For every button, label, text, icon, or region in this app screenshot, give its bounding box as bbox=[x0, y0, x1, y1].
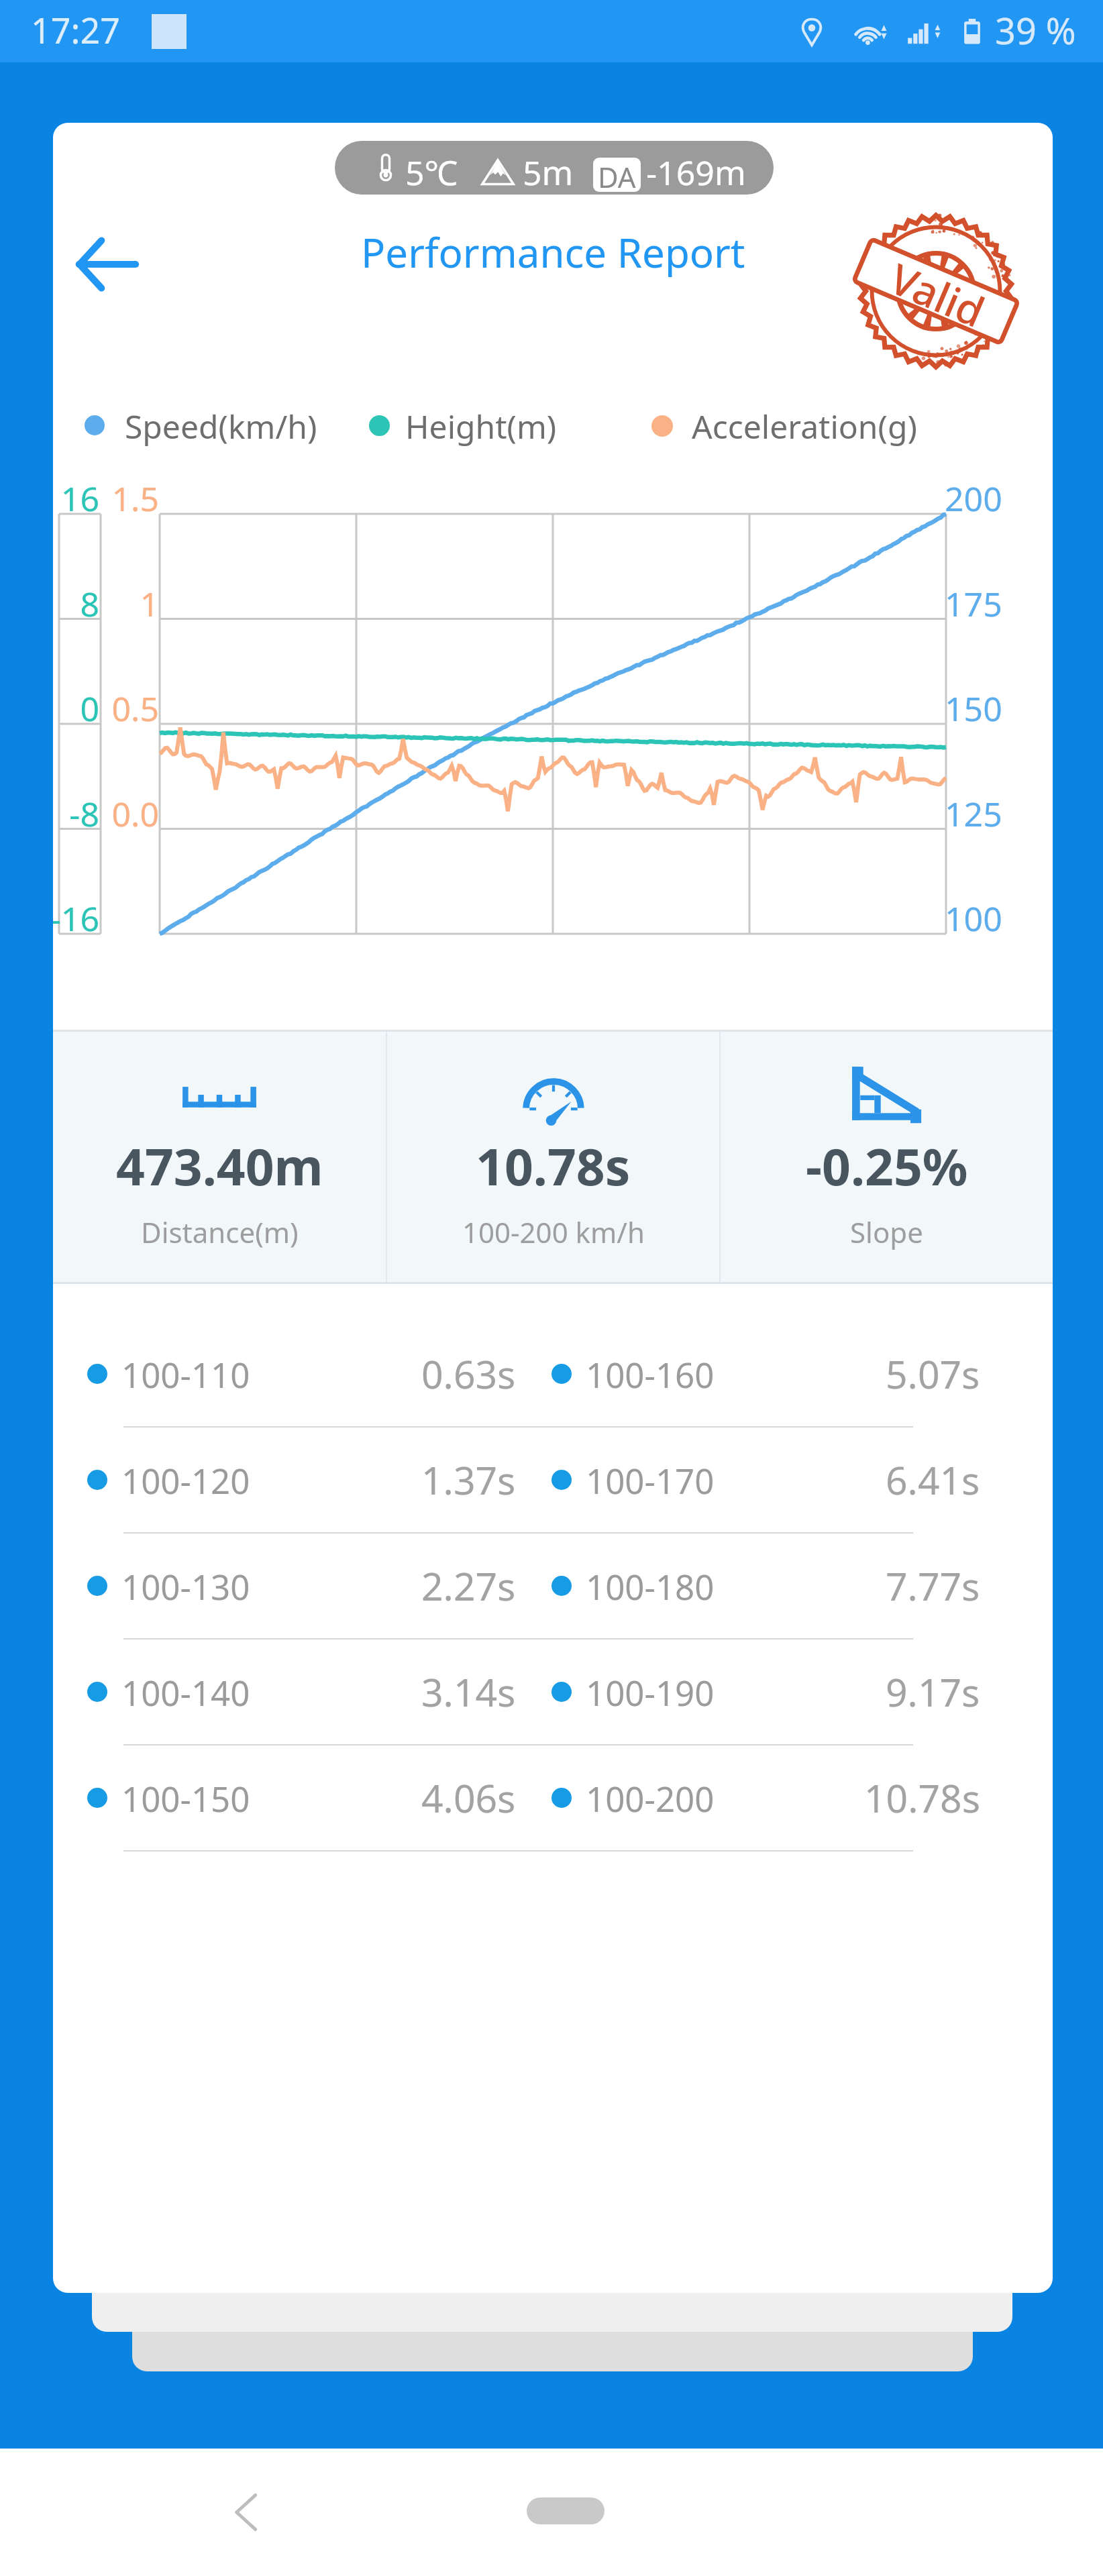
staticText: 1.37s bbox=[421, 1454, 516, 1506]
staticText: 5m bbox=[523, 150, 574, 195]
staticText: 125 bbox=[945, 791, 1002, 837]
staticText: 100-200 km/h bbox=[462, 1213, 645, 1251]
staticText: 1.5 bbox=[78, 476, 159, 521]
staticText: 175 bbox=[945, 581, 1002, 627]
button[interactable]: 100-150 bbox=[53, 1749, 1053, 1847]
staticText: 5℃ bbox=[405, 150, 458, 195]
staticText: 100-110 bbox=[121, 1351, 250, 1397]
button[interactable]: -0.25% bbox=[721, 1030, 1053, 1284]
staticText: DA bbox=[598, 158, 636, 192]
staticText: 200 bbox=[945, 476, 1002, 521]
staticText: -8 bbox=[53, 791, 99, 837]
staticText: Performance Report bbox=[361, 225, 745, 280]
staticText: 473.40m bbox=[116, 1132, 323, 1200]
button[interactable]: 100-110 bbox=[53, 1325, 1053, 1423]
staticText: 100-200 bbox=[586, 1775, 715, 1821]
staticText: 0.5 bbox=[78, 686, 159, 731]
staticText: 100-180 bbox=[586, 1563, 715, 1609]
staticText: -169m bbox=[646, 150, 746, 195]
staticText: 17:27 bbox=[31, 6, 120, 54]
staticText: 150 bbox=[945, 686, 1002, 731]
staticText: -0.25% bbox=[806, 1132, 968, 1200]
button[interactable]: 10.78s bbox=[387, 1030, 719, 1284]
staticText: 100-150 bbox=[121, 1775, 250, 1821]
staticText: 8 bbox=[53, 581, 99, 627]
staticText: 16 bbox=[53, 476, 99, 521]
staticText: 6.41s bbox=[886, 1454, 980, 1506]
button[interactable]: Back bbox=[213, 2479, 280, 2546]
staticText: 100-190 bbox=[586, 1669, 715, 1715]
button[interactable]: 100-130 bbox=[53, 1537, 1053, 1635]
staticText: 100-140 bbox=[121, 1669, 250, 1715]
staticText: 7.77s bbox=[886, 1560, 980, 1612]
staticText: 9.17s bbox=[886, 1666, 980, 1718]
staticText: 1 bbox=[78, 581, 159, 627]
button[interactable]: 473.40m bbox=[53, 1030, 386, 1284]
staticText: -16 bbox=[53, 896, 99, 941]
button[interactable]: Back bbox=[66, 225, 146, 304]
staticText: 3.14s bbox=[421, 1666, 516, 1718]
staticText: Valid bbox=[882, 250, 994, 340]
staticText: 0 bbox=[53, 686, 99, 731]
staticText: Speed(km/h) bbox=[125, 405, 317, 448]
button[interactable]: 100-140 bbox=[53, 1643, 1053, 1741]
staticText: 0.0 bbox=[78, 791, 159, 837]
staticText: 100 bbox=[945, 896, 1002, 941]
staticText: 4.06s bbox=[421, 1772, 516, 1824]
staticText: 39 % bbox=[995, 5, 1076, 55]
staticText: 0.63s bbox=[421, 1348, 516, 1400]
button[interactable]: Home bbox=[527, 2498, 605, 2524]
staticText: 100-130 bbox=[121, 1563, 250, 1609]
staticText: 100-170 bbox=[586, 1457, 715, 1503]
staticText: Distance(m) bbox=[141, 1213, 299, 1251]
staticText: 5.07s bbox=[886, 1348, 980, 1400]
staticText: 100-160 bbox=[586, 1351, 715, 1397]
staticText: Acceleration(g) bbox=[692, 405, 917, 448]
staticText: Slope bbox=[850, 1213, 923, 1251]
staticText: Height(m) bbox=[405, 405, 557, 448]
staticText: 2.27s bbox=[421, 1560, 516, 1612]
staticText: 10.78s bbox=[476, 1132, 631, 1200]
button[interactable]: 100-120 bbox=[53, 1431, 1053, 1529]
staticText: 10.78s bbox=[864, 1772, 980, 1824]
staticText: 100-120 bbox=[121, 1457, 250, 1503]
button[interactable]: 5℃ bbox=[335, 141, 774, 195]
